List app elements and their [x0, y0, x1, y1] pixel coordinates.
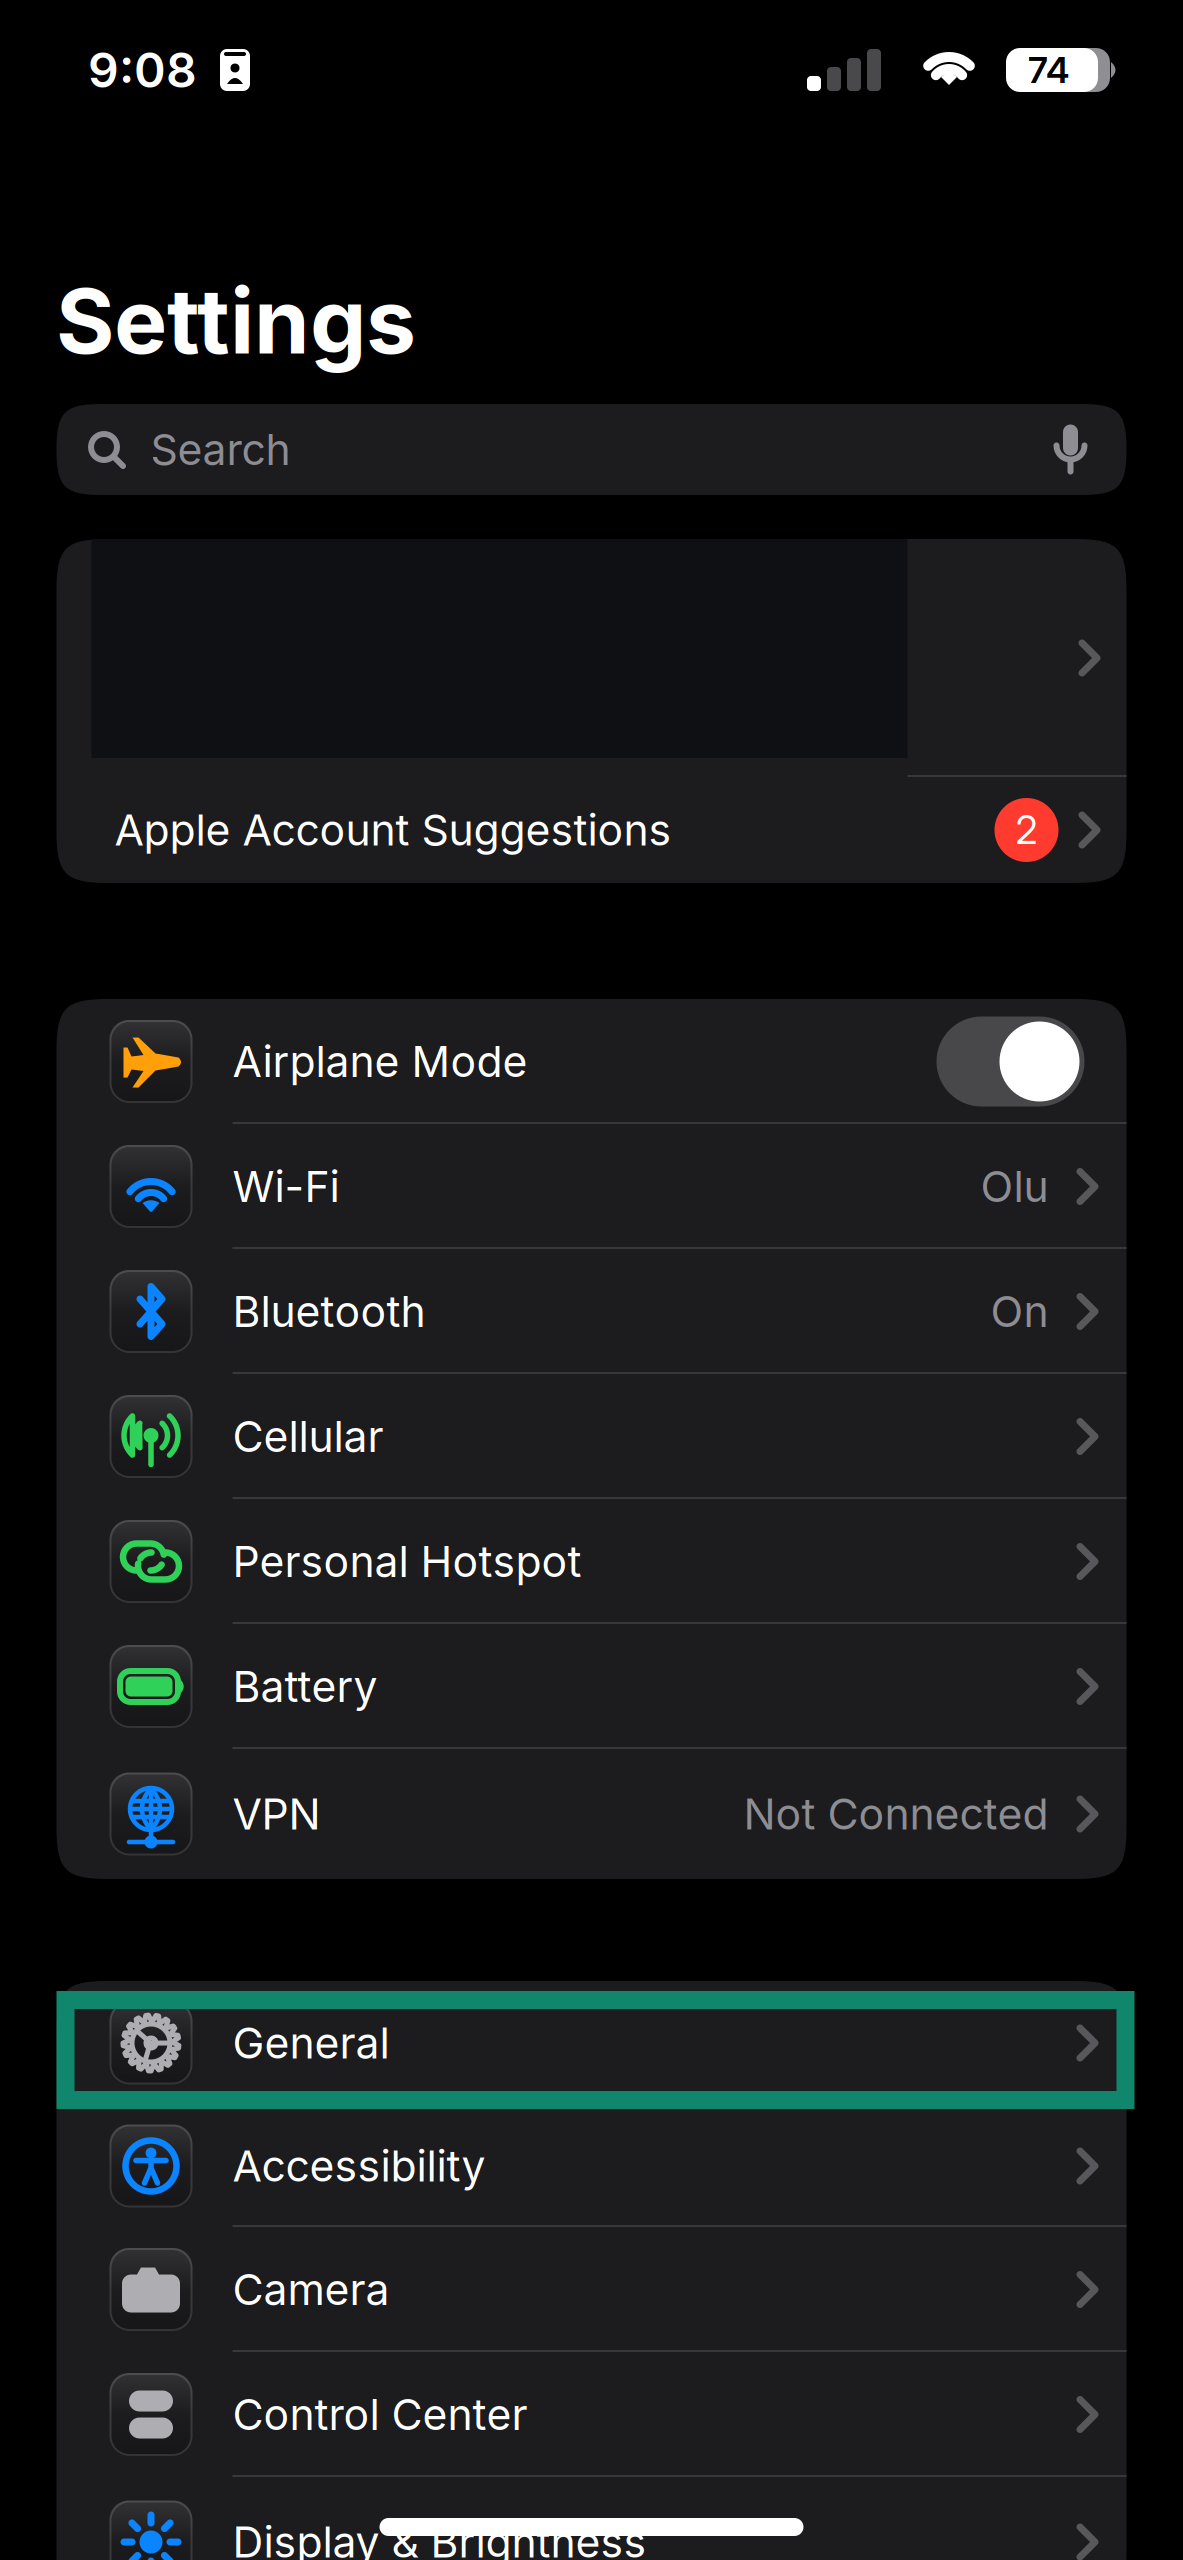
staticText: 2 [1015, 807, 1037, 853]
button[interactable] [56, 539, 1126, 777]
staticText: Bluetooth [232, 1286, 425, 1337]
button[interactable]: Camera [56, 2227, 1126, 2352]
staticText: 9:08 [88, 41, 197, 99]
staticText: Control Center [232, 2389, 527, 2440]
staticText: Personal Hotspot [232, 1536, 581, 1587]
staticText: Olu [980, 1161, 1048, 1212]
staticText: Accessibility [232, 2140, 485, 2192]
staticText: Apple Account Suggestions [114, 804, 671, 856]
staticText: VPN [232, 1788, 320, 1840]
staticText: Battery [232, 1661, 377, 1712]
staticText: Airplane Mode [232, 1036, 527, 1087]
staticText: 74 [1028, 48, 1069, 92]
button[interactable]: Search [56, 404, 1126, 495]
staticText: Search [150, 424, 290, 475]
staticText: Settings [56, 267, 416, 375]
staticText: Display & Brightness [232, 2516, 646, 2560]
button[interactable]: Wi-Fi [56, 1124, 1126, 1249]
staticText: Camera [232, 2264, 389, 2315]
button[interactable]: VPN [56, 1749, 1126, 1879]
button[interactable]: Cellular [56, 1374, 1126, 1499]
button[interactable]: Display & Brightness [56, 2477, 1126, 2560]
staticText: Cellular [232, 1411, 383, 1462]
staticText: Wi-Fi [232, 1161, 339, 1212]
button[interactable]: Personal Hotspot [56, 1499, 1126, 1624]
button[interactable]: Bluetooth [56, 1249, 1126, 1374]
button[interactable]: Battery [56, 1624, 1126, 1749]
button[interactable]: Control Center [56, 2352, 1126, 2477]
staticText: Not Connected [743, 1788, 1048, 1840]
staticText: On [990, 1286, 1048, 1337]
button[interactable]: Accessibility [56, 2105, 1126, 2227]
button[interactable]: Airplane Mode [56, 999, 1126, 1124]
staticText: General [232, 2017, 389, 2069]
button[interactable]: General [56, 1981, 1126, 2105]
button[interactable]: Apple Account Suggestions [56, 777, 1126, 883]
